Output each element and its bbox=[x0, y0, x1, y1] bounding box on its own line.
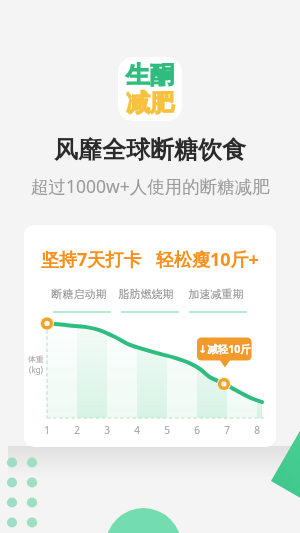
staticText: 超过1000w+人使用的断糖减肥 bbox=[31, 174, 270, 198]
button[interactable]: 生酮 bbox=[118, 57, 182, 121]
staticText: 1 bbox=[41, 423, 53, 437]
staticText: ↓减轻10斤 bbox=[197, 342, 252, 356]
staticText: 4 bbox=[131, 423, 143, 437]
staticText: 8 bbox=[251, 423, 263, 437]
staticText: 断糖启动期 bbox=[49, 287, 109, 301]
staticText: 6 bbox=[191, 423, 203, 437]
staticText: (kg) bbox=[29, 364, 43, 375]
staticText: 2 bbox=[71, 423, 83, 437]
staticText: 5 bbox=[161, 423, 173, 437]
staticText: 风靡全球断糖饮食 bbox=[54, 135, 246, 165]
staticText: 轻松瘦10斤+ bbox=[156, 247, 259, 272]
staticText: 脂肪燃烧期 bbox=[116, 287, 176, 301]
staticText: 减肥 bbox=[118, 88, 182, 118]
staticText: 体重 bbox=[28, 354, 44, 364]
staticText: 7 bbox=[221, 423, 233, 437]
staticText: 生酮 bbox=[118, 60, 182, 90]
staticText: 坚持7天打卡 bbox=[41, 247, 142, 272]
staticText: 加速减重期 bbox=[186, 287, 246, 301]
staticText: 3 bbox=[101, 423, 113, 437]
